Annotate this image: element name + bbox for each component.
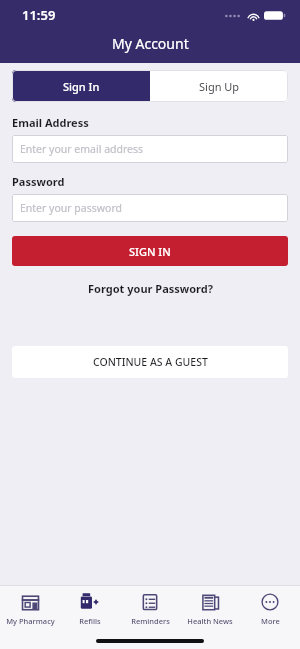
- button[interactable]: SIGN IN: [12, 236, 288, 266]
- staticText: 11:59: [22, 6, 56, 24]
- button[interactable]: More: [240, 591, 300, 649]
- staticText: Enter your email address: [20, 142, 144, 156]
- staticText: Email Address: [12, 115, 89, 130]
- other: Refills: [80, 592, 100, 612]
- button[interactable]: Enter your email address: [12, 135, 288, 163]
- button[interactable]: Enter your password: [12, 194, 288, 222]
- button[interactable]: CONTINUE AS A GUEST: [12, 346, 288, 378]
- staticText: CONTINUE AS A GUEST: [93, 355, 208, 369]
- button[interactable]: Refills: [60, 591, 120, 649]
- staticText: Password: [12, 174, 65, 189]
- staticText: Sign In: [63, 79, 100, 94]
- staticText: Refills: [79, 616, 101, 626]
- button[interactable]: Forgot your Password?: [88, 281, 213, 296]
- other: My Pharmacy: [21, 593, 40, 612]
- staticText: Enter your password: [20, 201, 122, 215]
- other: Reminders: [141, 593, 159, 611]
- button[interactable]: Sign Up: [150, 70, 288, 102]
- staticText: More: [261, 616, 280, 626]
- other: More: [261, 593, 279, 611]
- button[interactable]: Sign In: [12, 70, 150, 102]
- staticText: Health News: [187, 616, 233, 626]
- other: Health News: [201, 593, 220, 612]
- staticText: My Pharmacy: [6, 616, 55, 626]
- staticText: Reminders: [131, 616, 170, 626]
- staticText: Forgot your Password?: [88, 281, 213, 296]
- button[interactable]: My Pharmacy: [0, 591, 60, 649]
- button[interactable]: Reminders: [120, 591, 180, 649]
- button[interactable]: Health News: [180, 591, 240, 649]
- staticText: My Account: [112, 34, 189, 53]
- staticText: SIGN IN: [129, 244, 171, 259]
- staticText: Sign Up: [199, 79, 240, 94]
